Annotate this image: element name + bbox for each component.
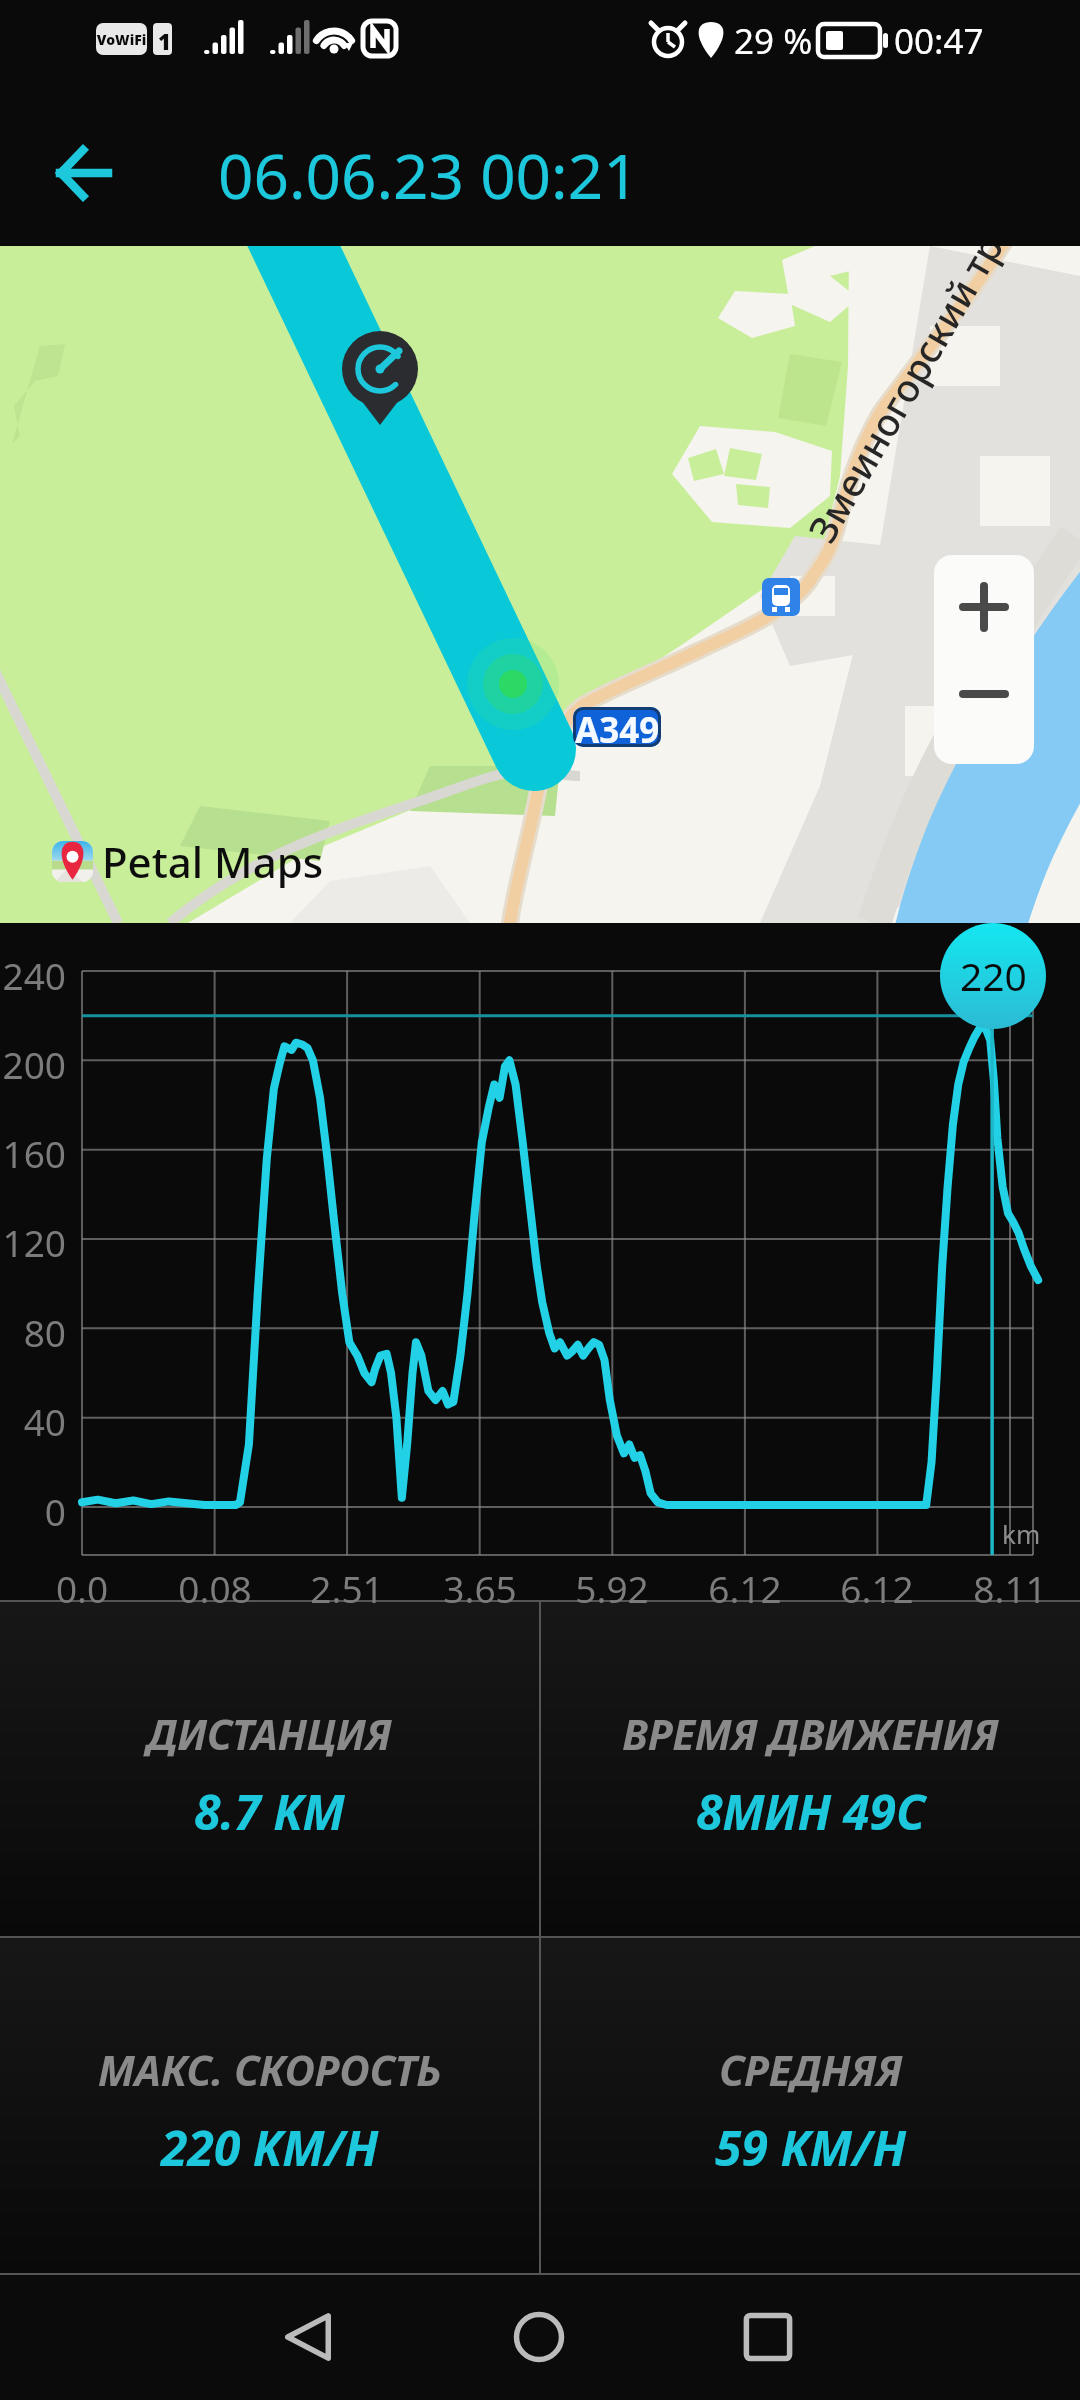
staticText: 220 KM/H [161,2115,379,2180]
staticText: 240 [0,950,66,1000]
staticText: 2.51 [267,1563,427,1613]
button[interactable]: ДИСТАНЦИЯ [0,1602,539,1936]
staticText: 29 % [734,17,813,65]
staticText: ВРЕМЯ ДВИЖЕНИЯ [622,1705,999,1762]
staticText: 0 [0,1486,66,1536]
staticText: 6.12 [797,1563,957,1613]
staticText: 59 KM/H [715,2115,907,2180]
staticText: 220 [960,949,1027,1002]
staticText: 5.92 [532,1563,692,1613]
button[interactable]: Home [487,2285,591,2389]
staticText: 40 [0,1396,66,1446]
staticText: 00:47 [894,17,984,65]
staticText: СРЕДНЯЯ [719,2041,903,2098]
staticText: ДИСТАНЦИЯ [147,1705,392,1762]
staticText: 1 [158,26,171,56]
staticText: 200 [0,1039,66,1089]
staticText: 06.06.23 00:21 [218,133,639,217]
button[interactable]: Back [24,113,144,233]
staticText: 6.12 [665,1563,825,1613]
staticText: VoWiFi [96,30,147,49]
staticText: 160 [0,1128,66,1178]
button[interactable]: Zoom in [934,555,1034,659]
staticText: 0.08 [135,1563,295,1613]
button[interactable]: МАКС. СКОРОСТЬ [0,1938,539,2273]
staticText: km [1002,1516,1041,1551]
staticText: 0.0 [2,1563,162,1613]
button[interactable]: ВРЕМЯ ДВИЖЕНИЯ [541,1602,1080,1936]
staticText: 120 [0,1217,66,1267]
button[interactable]: Recents [716,2285,820,2389]
staticText: 3.65 [400,1563,560,1613]
staticText: 8МИН 49С [696,1779,925,1844]
staticText: 80 [0,1307,66,1357]
button[interactable]: СРЕДНЯЯ [541,1938,1080,2273]
staticText: Petal Maps [102,833,324,890]
button[interactable]: Zoom out [934,659,1034,764]
staticText: Змеиногорский тра [795,246,1025,551]
staticText: A349 [575,707,660,746]
staticText: 8.7 KM [194,1779,345,1844]
button[interactable]: Back [256,2285,360,2389]
staticText: 8.11 [930,1563,1080,1613]
staticText: МАКС. СКОРОСТЬ [98,2041,442,2098]
